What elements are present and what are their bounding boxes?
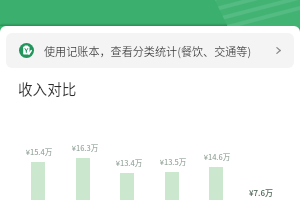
staticText: ¥7.6万 bbox=[249, 187, 274, 199]
staticText: ¥15.4万 bbox=[23, 146, 55, 157]
staticText: 收入对比 bbox=[18, 78, 77, 99]
button[interactable]: 使用记账本，查看分类统计(餐饮、交通等) bbox=[6, 33, 294, 68]
staticText: ¥13.5万 bbox=[157, 156, 189, 167]
staticText: ¥13.4万 bbox=[113, 157, 145, 168]
staticText: ¥14.6万 bbox=[201, 151, 233, 162]
other: More bbox=[274, 46, 283, 55]
staticText: 使用记账本，查看分类统计(餐饮、交通等) bbox=[44, 43, 252, 59]
staticText: ¥16.3万 bbox=[69, 142, 101, 153]
